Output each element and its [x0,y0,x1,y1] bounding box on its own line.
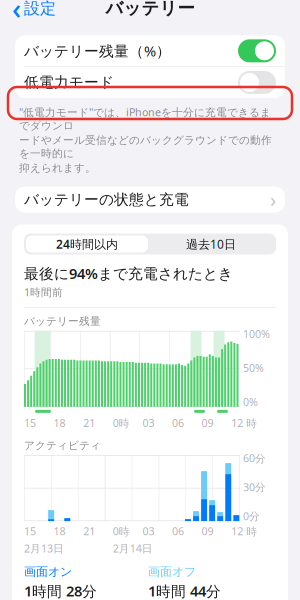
staticText: 50% [243,361,264,375]
staticText: 0時 [113,524,130,538]
staticText: › [270,186,276,213]
button[interactable]: 過去10日 [148,235,274,252]
staticText: 1時間前 [24,285,63,299]
staticText: バッテリーの状態と充電 [24,190,189,208]
staticText: 15 [24,524,36,538]
staticText: 06 [172,524,184,538]
staticText: 30分 [243,480,266,494]
staticText: 低電力モード [24,73,114,91]
staticText: 06 [172,416,184,430]
staticText: 2月13日 [24,541,64,555]
button[interactable]: ‹ [0,0,64,25]
button[interactable]: 低電力モード [15,67,285,98]
staticText: バッテリー残量 [24,315,101,328]
staticText: ードやメール受信などのバックグラウンドでの動作を一時的に [19,134,272,160]
staticText: 09 [202,416,214,430]
staticText: 設定 [24,0,56,18]
staticText: 100% [243,327,270,341]
button[interactable]: バッテリーの状態と充電 [15,186,285,212]
staticText: 03 [142,416,154,430]
staticText: 1時間 44分 [148,581,221,600]
staticText: 過去10日 [186,236,236,252]
staticText: 画面オン [24,564,72,579]
staticText: 15 [24,416,36,430]
staticText: 2月14日 [113,541,153,555]
staticText: 18 [54,524,66,538]
staticText: 18 [54,416,66,430]
staticText: ‹ [12,0,21,27]
staticText: アクティビティ [24,439,101,452]
staticText: 12 時 [231,524,257,538]
staticText: 12 時 [231,416,257,430]
staticText: バッテリー残量（%） [24,41,171,61]
staticText: 60分 [243,451,266,465]
staticText: "低電力モード"では、iPhoneを十分に充電できるまでダウンロ [19,105,271,132]
staticText: 0分 [243,509,260,523]
staticText: 0時 [113,416,130,430]
staticText: 09 [202,524,214,538]
staticText: 03 [142,524,154,538]
staticText: 画面オフ [148,564,196,579]
staticText: 21 [83,416,95,430]
staticText: 24時間以内 [56,236,118,252]
button[interactable]: 24時間以内 [26,235,148,252]
staticText: 1時間 28分 [24,581,97,600]
button[interactable]: バッテリー残量（%） [15,35,285,66]
staticText: 0% [243,395,258,409]
staticText: 最後に94%まで充電されたとき [24,263,233,283]
staticText: 21 [83,524,95,538]
staticText: 抑えられます。 [19,161,96,174]
staticText: バッテリー [105,0,194,19]
